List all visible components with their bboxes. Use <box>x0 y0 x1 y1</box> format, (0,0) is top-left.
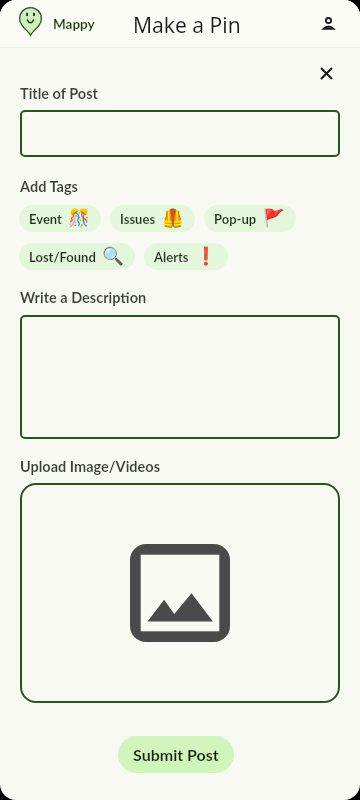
staticText: Alerts <box>154 249 189 265</box>
button[interactable]: Event <box>19 205 101 232</box>
button[interactable]: Mappy <box>19 7 95 36</box>
staticText: Lost/Found <box>29 249 96 265</box>
staticText: Pop-up <box>214 211 257 227</box>
button[interactable]: Upload image or video <box>20 483 340 703</box>
staticText: 🔍 <box>102 246 124 267</box>
button[interactable] <box>20 110 340 157</box>
staticText: ❗ <box>195 246 217 267</box>
button[interactable]: Account <box>313 8 344 39</box>
button[interactable]: Close <box>314 61 338 85</box>
staticText: Make a Pin <box>133 11 241 40</box>
button[interactable]: Alerts <box>144 243 228 270</box>
staticText: Submit Post <box>133 745 219 764</box>
staticText: Issues <box>120 211 156 227</box>
staticText: 🚩 <box>263 208 285 229</box>
staticText: Add Tags <box>20 178 78 195</box>
staticText: 🦺 <box>162 208 184 229</box>
staticText: 🎊 <box>68 208 90 229</box>
staticText: Upload Image/Videos <box>20 458 161 475</box>
button[interactable]: Issues <box>110 205 195 232</box>
staticText: Write a Description <box>20 289 147 306</box>
staticText: Mappy <box>53 16 95 32</box>
button[interactable]: Lost/Found <box>19 243 135 270</box>
button[interactable]: Pop-up <box>204 205 296 232</box>
button[interactable] <box>20 315 340 439</box>
staticText: Event <box>29 211 62 227</box>
staticText: Title of Post <box>20 85 98 102</box>
button[interactable]: Submit Post <box>118 736 234 773</box>
